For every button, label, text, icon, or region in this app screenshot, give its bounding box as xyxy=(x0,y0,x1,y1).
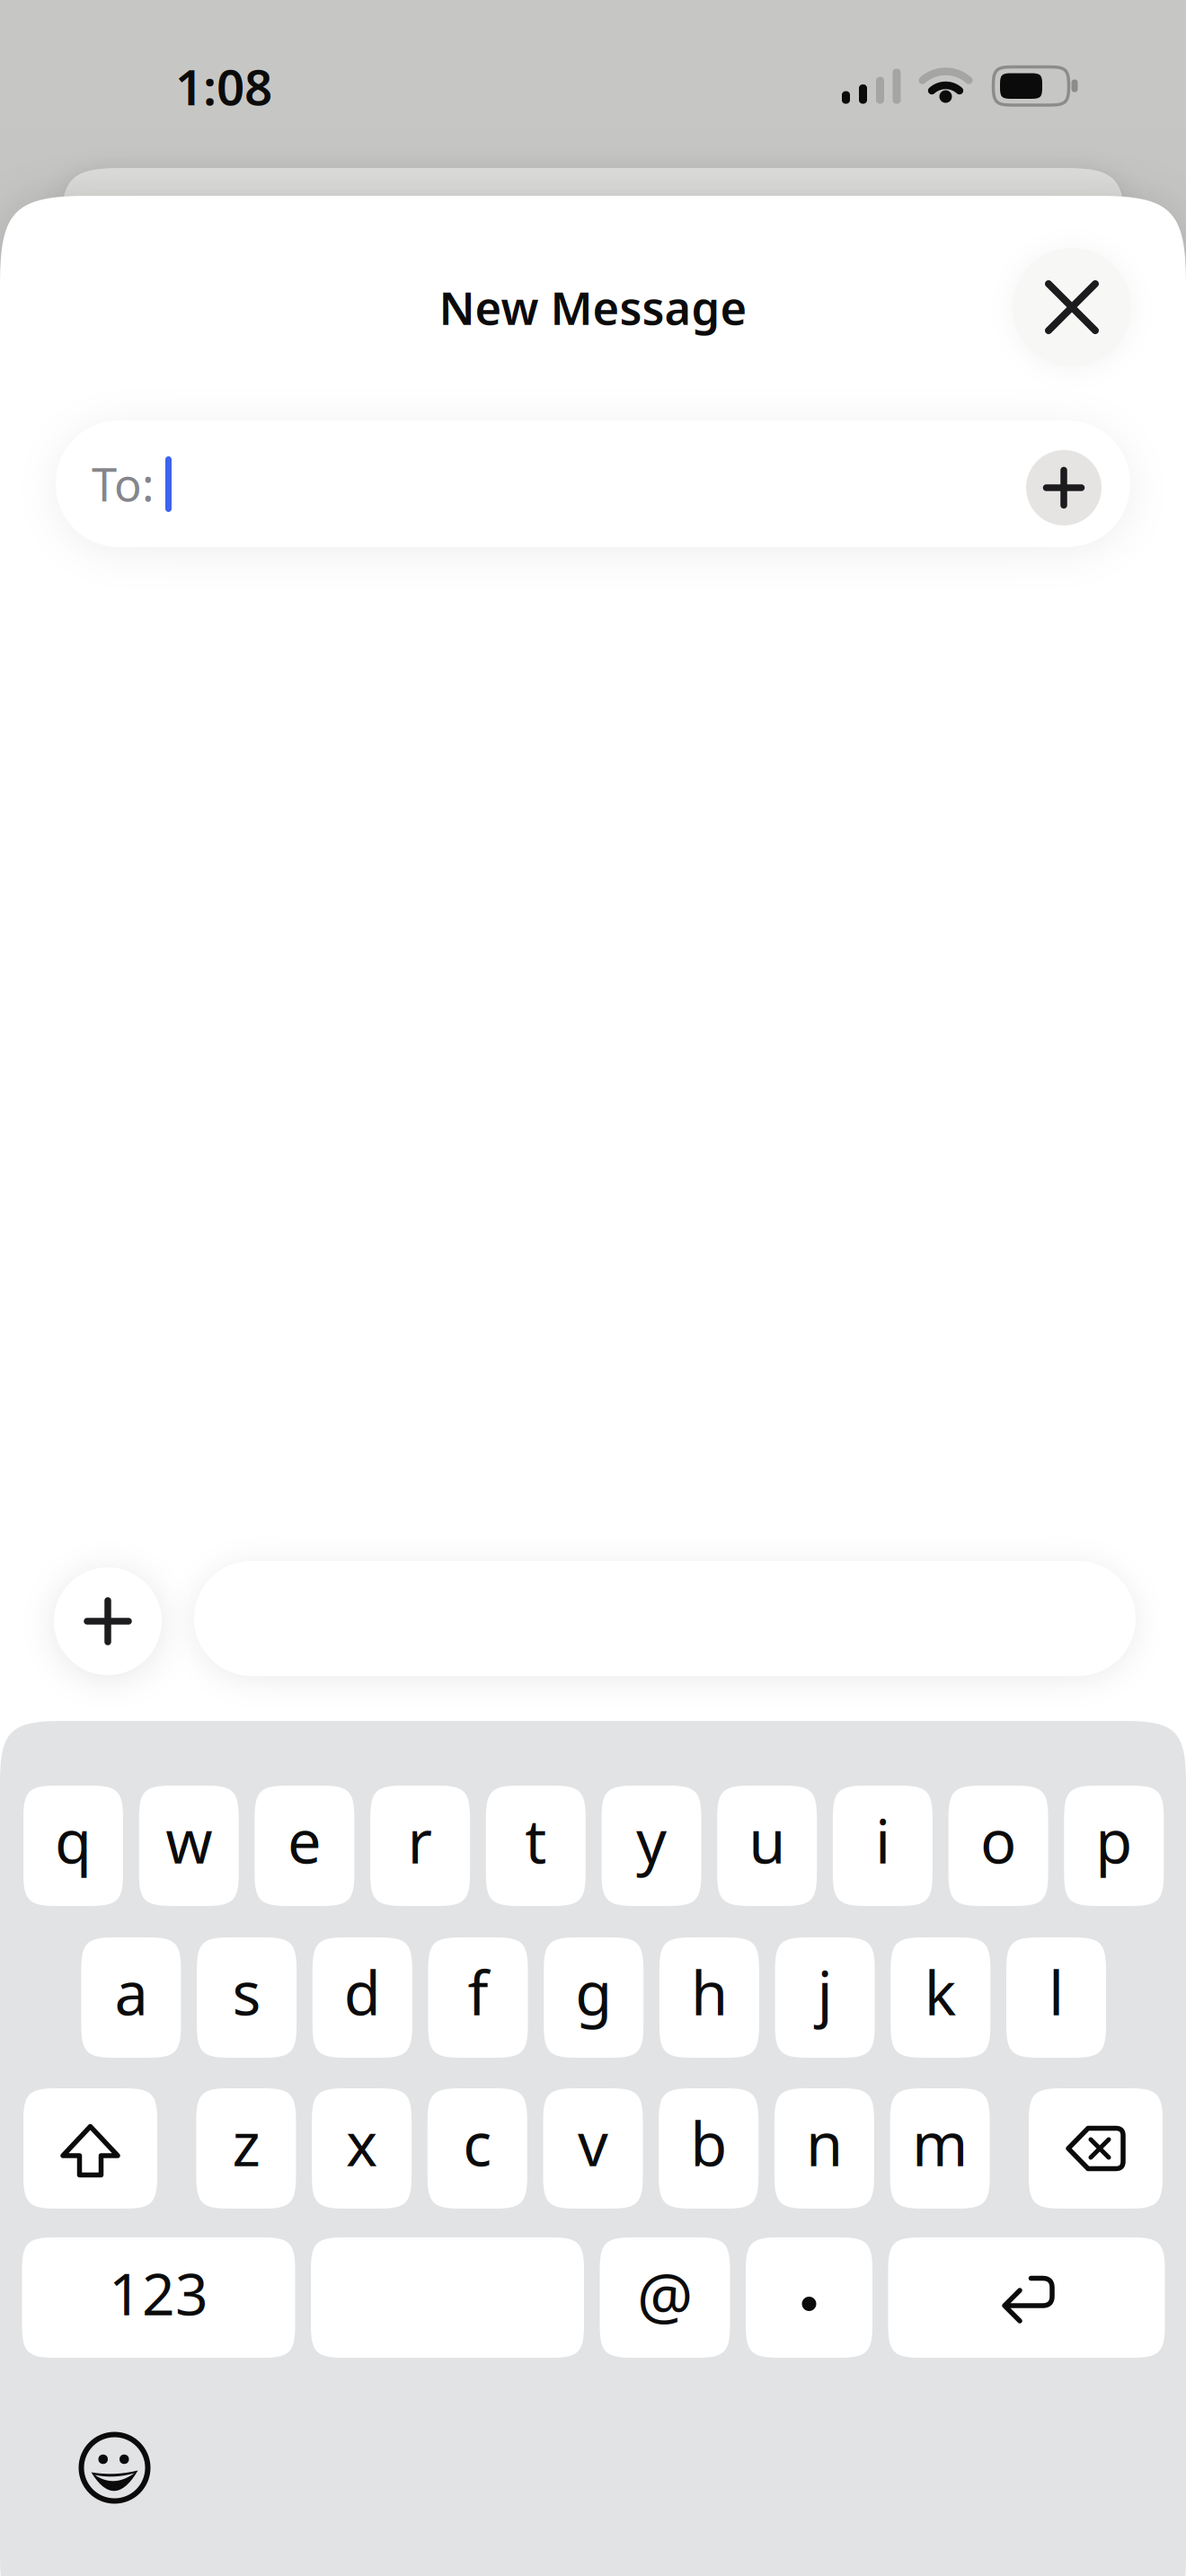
staticText: f xyxy=(468,1952,488,2032)
button[interactable]: p xyxy=(1064,1786,1164,1906)
staticText: New Message xyxy=(439,277,747,337)
button[interactable]: f xyxy=(428,1937,528,2058)
staticText: 123 xyxy=(109,2255,208,2331)
staticText: j xyxy=(817,1952,833,2032)
button[interactable]: k xyxy=(891,1937,990,2058)
staticText: l xyxy=(1049,1952,1064,2032)
button[interactable]: v xyxy=(543,2088,643,2209)
staticText: w xyxy=(166,1801,212,1880)
staticText: y xyxy=(636,1801,667,1880)
button[interactable]: Close xyxy=(1013,248,1131,366)
button[interactable]: l xyxy=(1006,1937,1106,2058)
staticText: u xyxy=(749,1801,785,1880)
staticText: d xyxy=(344,1952,381,2032)
staticText: v xyxy=(578,2103,608,2183)
staticText: p xyxy=(1096,1801,1132,1880)
button[interactable]: o xyxy=(948,1786,1048,1906)
button[interactable]: u xyxy=(717,1786,817,1906)
button[interactable]: To xyxy=(56,420,1130,547)
staticText: o xyxy=(980,1801,1016,1880)
button[interactable]: Space xyxy=(311,2237,584,2358)
button[interactable]: q xyxy=(23,1786,123,1906)
staticText: 1:08 xyxy=(175,54,272,119)
staticText: g xyxy=(575,1952,612,2032)
staticText: a xyxy=(114,1952,148,2032)
staticText: n xyxy=(806,2103,843,2183)
staticText: s xyxy=(232,1952,261,2032)
button[interactable]: e xyxy=(255,1786,354,1906)
button[interactable]: i xyxy=(833,1786,933,1906)
button[interactable]: s xyxy=(197,1937,297,2058)
staticText: x xyxy=(346,2103,377,2183)
button[interactable]: Delete xyxy=(1029,2088,1163,2209)
button[interactable]: t xyxy=(486,1786,586,1906)
staticText: z xyxy=(232,2103,260,2183)
button[interactable]: h xyxy=(659,1937,759,2058)
button[interactable]: 123 xyxy=(22,2237,295,2358)
button[interactable]: Attachments xyxy=(54,1567,162,1675)
button[interactable]: Shift xyxy=(23,2088,157,2209)
button[interactable]: Period xyxy=(746,2237,872,2358)
button[interactable]: Return xyxy=(888,2237,1165,2358)
button[interactable]: n xyxy=(774,2088,874,2209)
staticText: m xyxy=(912,2103,968,2183)
button[interactable]: Emoji xyxy=(78,2431,151,2504)
button[interactable]: g xyxy=(544,1937,643,2058)
button[interactable]: r xyxy=(370,1786,470,1906)
staticText: To: xyxy=(92,454,155,514)
button[interactable]: d xyxy=(312,1937,412,2058)
button[interactable]: w xyxy=(139,1786,239,1906)
button[interactable]: b xyxy=(659,2088,759,2209)
staticText: q xyxy=(55,1801,92,1880)
staticText: b xyxy=(690,2103,727,2183)
button[interactable]: y xyxy=(602,1786,701,1906)
button[interactable]: c xyxy=(427,2088,527,2209)
staticText: i xyxy=(875,1801,890,1880)
button[interactable]: a xyxy=(81,1937,181,2058)
button[interactable]: @ xyxy=(600,2237,730,2358)
staticText: e xyxy=(287,1801,322,1880)
button[interactable]: m xyxy=(890,2088,990,2209)
staticText: @ xyxy=(637,2254,693,2336)
button[interactable]: Add Contact xyxy=(1026,450,1102,525)
button[interactable]: x xyxy=(312,2088,412,2209)
button[interactable]: j xyxy=(775,1937,875,2058)
staticText: k xyxy=(924,1952,957,2032)
staticText: r xyxy=(408,1801,433,1880)
button[interactable]: z xyxy=(196,2088,296,2209)
staticText: h xyxy=(691,1952,728,2032)
staticText: c xyxy=(463,2103,492,2183)
staticText: t xyxy=(525,1801,547,1880)
